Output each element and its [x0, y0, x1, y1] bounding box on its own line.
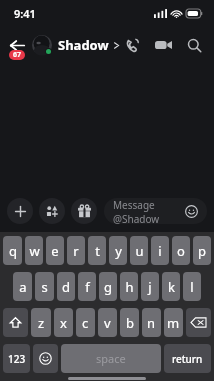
staticText: z [38, 314, 45, 332]
staticText: t [95, 242, 100, 260]
staticText: u [135, 242, 144, 260]
staticText: f [85, 278, 90, 296]
staticText: v [104, 314, 111, 332]
staticText: w [29, 242, 40, 260]
staticText: Shadow [58, 36, 109, 54]
button[interactable]: n [142, 308, 161, 337]
button[interactable]: space [61, 344, 161, 373]
button[interactable]: c [76, 308, 95, 337]
staticText: g [104, 278, 112, 296]
button[interactable]: Back [4, 32, 30, 58]
staticText: o [177, 242, 185, 260]
staticText: 9:41 [14, 6, 36, 21]
staticText: a [19, 278, 27, 296]
button[interactable]: o [172, 236, 190, 265]
staticText: m [167, 314, 180, 332]
button[interactable]: z [31, 308, 51, 337]
staticText: 67 [13, 50, 22, 60]
staticText: c [82, 314, 89, 332]
staticText: l [190, 278, 194, 296]
staticText: j [148, 278, 152, 296]
button[interactable]: t [88, 236, 106, 265]
button[interactable]: Start video call [151, 33, 175, 57]
button[interactable]: i [151, 236, 169, 265]
staticText: space [96, 351, 126, 366]
button[interactable]: Add attachment [7, 198, 33, 224]
staticText: y [115, 242, 122, 260]
staticText: Message @Shadow [113, 198, 185, 224]
staticText: e [51, 242, 59, 260]
button[interactable]: u [130, 236, 148, 265]
button[interactable]: m [164, 308, 183, 337]
staticText: n [147, 314, 156, 332]
button[interactable]: Shadow [32, 35, 120, 55]
staticText: h [125, 278, 134, 296]
button[interactable]: r [67, 236, 85, 265]
button[interactable]: v [98, 308, 117, 337]
button[interactable]: Start voice call [120, 33, 144, 57]
button[interactable]: w [25, 236, 43, 265]
button[interactable]: Emoji [33, 344, 58, 373]
button[interactable]: Shift [3, 308, 28, 337]
button[interactable]: 123 [3, 344, 30, 373]
button[interactable]: d [57, 272, 75, 301]
button[interactable]: g [99, 272, 117, 301]
button[interactable]: k [162, 272, 180, 301]
button[interactable]: a [13, 272, 32, 301]
button[interactable]: e [46, 236, 64, 265]
staticText: x [60, 314, 67, 332]
button[interactable]: l [183, 272, 201, 301]
staticText: i [158, 242, 162, 260]
staticText: q [9, 242, 17, 260]
button[interactable]: x [54, 308, 73, 337]
staticText: k [168, 278, 175, 296]
button[interactable]: h [120, 272, 138, 301]
staticText: d [62, 278, 70, 296]
button[interactable]: s [35, 272, 54, 301]
button[interactable]: Message @Shadow [104, 198, 207, 224]
staticText: b [126, 314, 134, 332]
staticText: s [41, 278, 48, 296]
button[interactable]: Stickers [39, 198, 65, 224]
button[interactable]: j [141, 272, 159, 301]
button[interactable]: b [120, 308, 139, 337]
button[interactable]: f [78, 272, 96, 301]
staticText: r [73, 242, 79, 260]
button[interactable]: p [193, 236, 211, 265]
button[interactable]: q [3, 236, 22, 265]
staticText: p [198, 242, 206, 260]
button[interactable]: y [109, 236, 127, 265]
button[interactable]: Search [182, 33, 206, 57]
button[interactable]: Backspace [186, 308, 211, 337]
staticText: 123 [8, 352, 26, 366]
button[interactable]: Send a gift [71, 198, 97, 224]
staticText: return [172, 352, 203, 366]
button[interactable]: return [164, 344, 211, 373]
